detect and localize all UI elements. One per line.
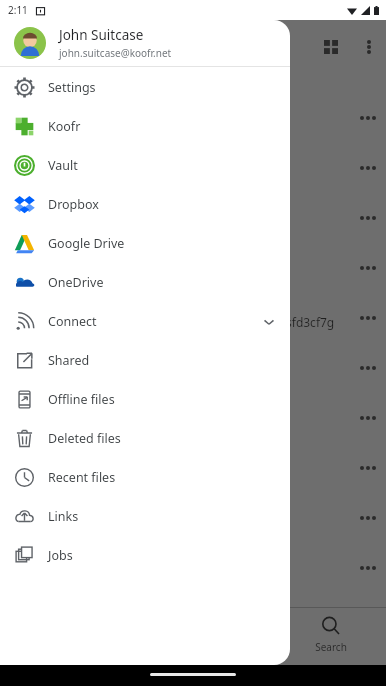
staticText: john.suitcase@koofr.net [59, 46, 172, 60]
staticText: Google Drive [48, 235, 125, 252]
staticText: Settings [48, 79, 96, 96]
staticText: sfd3cf7g [286, 314, 335, 330]
staticText: Search [315, 640, 347, 654]
button[interactable]: Deleted files [0, 419, 290, 458]
button[interactable]: Item options [350, 298, 386, 338]
button[interactable]: Connect [0, 302, 290, 341]
button[interactable]: OneDrive [0, 263, 290, 302]
button[interactable]: Item options [350, 448, 386, 488]
button[interactable]: Item options [350, 548, 386, 588]
button[interactable]: Settings [0, 68, 290, 107]
staticText: Dropbox [48, 196, 99, 213]
button[interactable]: Item options [350, 98, 386, 138]
button[interactable]: Item options [350, 198, 386, 238]
button[interactable]: Item options [350, 498, 386, 538]
staticText: OneDrive [48, 274, 104, 291]
button[interactable]: Recent files [0, 458, 290, 497]
button[interactable]: Google Drive [0, 224, 290, 263]
button[interactable]: Vault [0, 146, 290, 185]
button[interactable]: Grid view [318, 34, 344, 60]
staticText: Links [48, 508, 79, 525]
staticText: Recent files [48, 469, 116, 486]
staticText: 2:11 [8, 3, 28, 17]
button[interactable]: Item options [350, 148, 386, 188]
button[interactable]: John Suitcase [0, 20, 290, 66]
staticText: Connect [48, 313, 97, 330]
button[interactable]: Dropbox [0, 185, 290, 224]
staticText: Vault [48, 157, 78, 174]
button[interactable]: Offline files [0, 380, 290, 419]
button[interactable]: More options [356, 34, 382, 60]
button[interactable]: Search [302, 616, 360, 654]
staticText: Offline files [48, 391, 115, 408]
button[interactable]: Item options [350, 248, 386, 288]
button[interactable]: Item options [350, 348, 386, 388]
staticText: Deleted files [48, 430, 121, 447]
button[interactable]: Item options [350, 398, 386, 438]
staticText: John Suitcase [59, 26, 144, 44]
staticText: Shared [48, 352, 90, 369]
staticText: Koofr [48, 118, 81, 135]
button[interactable]: Jobs [0, 536, 290, 575]
button[interactable]: Shared [0, 341, 290, 380]
button[interactable]: Koofr [0, 107, 290, 146]
staticText: Jobs [48, 547, 73, 564]
button[interactable]: Links [0, 497, 290, 536]
